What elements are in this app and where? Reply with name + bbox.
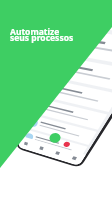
staticText: Automatize <box>10 26 60 38</box>
staticText: seus processos <box>10 32 74 44</box>
